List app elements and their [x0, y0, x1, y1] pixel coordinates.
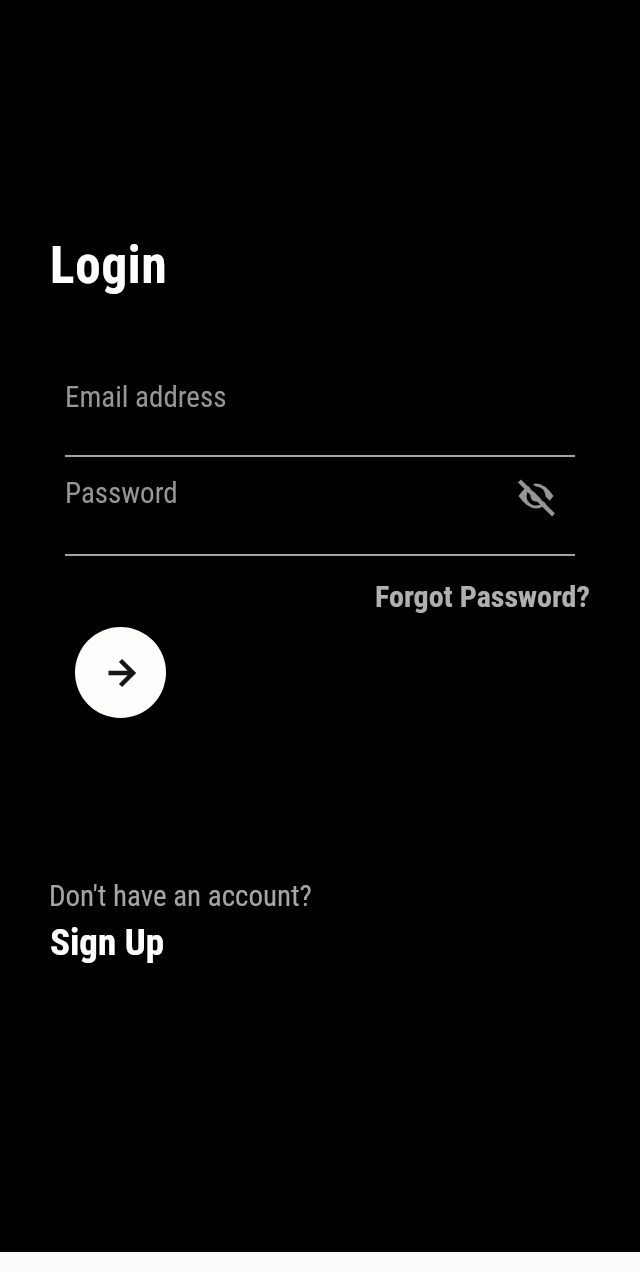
button[interactable]: Forgot Password?: [365, 572, 600, 620]
staticText: Don't have an account?: [49, 879, 312, 913]
staticText: Password: [65, 476, 178, 510]
button[interactable]: [75, 627, 166, 718]
button[interactable]: Sign Up: [40, 912, 175, 972]
button[interactable]: Email address: [50, 358, 590, 460]
staticText: Login: [50, 236, 168, 296]
button[interactable]: Password: [50, 460, 590, 560]
staticText: Forgot Password?: [375, 579, 590, 614]
staticText: Email address: [65, 380, 227, 414]
staticText: Sign Up: [50, 921, 165, 964]
button[interactable]: [514, 474, 558, 518]
